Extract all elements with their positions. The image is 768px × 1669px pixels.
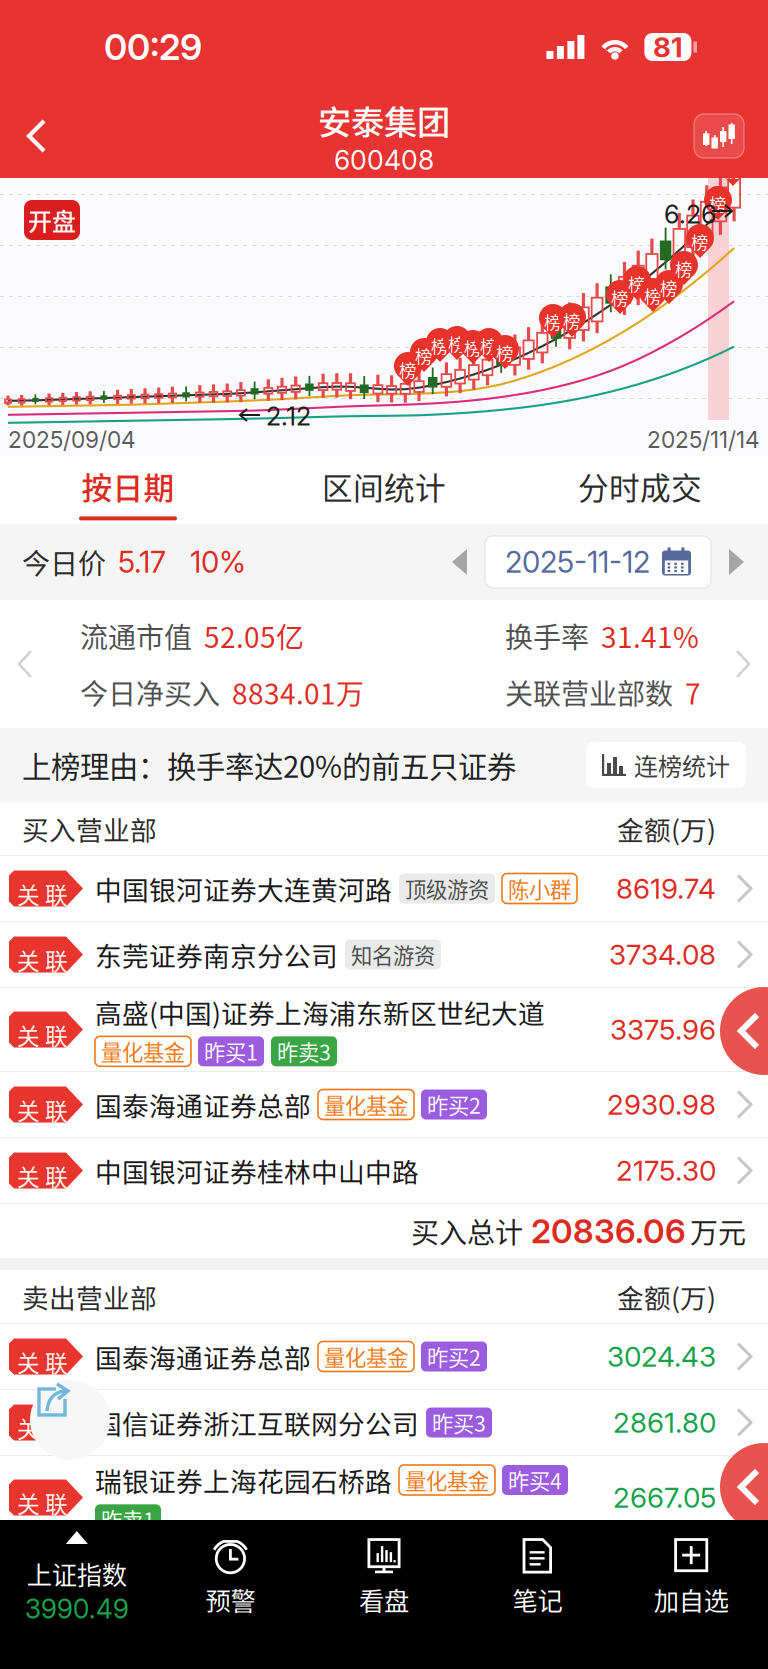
staticText: 8619.74 xyxy=(616,872,716,905)
staticText: 3990.49 xyxy=(25,1593,129,1625)
button[interactable]: Back xyxy=(720,987,768,1075)
button[interactable]: 关 联 xyxy=(0,922,768,988)
staticText: 关 联 xyxy=(17,1345,68,1378)
staticText: 关 联 xyxy=(17,1411,68,1444)
staticText: 关 联 xyxy=(17,1159,68,1192)
staticText: 金额(万) xyxy=(617,809,716,848)
staticText: 换手率 xyxy=(505,615,589,656)
staticText: 分时成交 xyxy=(578,464,702,508)
staticText: 陈小群 xyxy=(508,873,571,904)
button[interactable]: Previous day xyxy=(434,534,485,590)
staticText: 3024.43 xyxy=(607,1340,716,1373)
staticText: 榜 xyxy=(675,256,692,281)
staticText: 3375.96 xyxy=(610,1013,716,1046)
button[interactable]: Back xyxy=(0,101,74,171)
staticText: 量化基金 xyxy=(101,1036,185,1067)
staticText: 高盛(中国)证券上海浦东新区世纪大道 xyxy=(95,993,545,1031)
staticText: 加自选 xyxy=(654,1581,729,1618)
staticText: 2025-11-12 xyxy=(505,544,650,580)
staticText: 8834.01万 xyxy=(232,672,364,712)
button[interactable]: 按日期 xyxy=(0,456,256,524)
staticText: 昨买2 xyxy=(427,1341,481,1372)
staticText: 中国银河证券桂林中山中路 xyxy=(95,1151,419,1190)
staticText: 关 联 xyxy=(17,1018,68,1051)
staticText: 量化基金 xyxy=(405,1465,489,1495)
staticText: 今日净买入 xyxy=(80,672,220,712)
staticText: 安泰集团 xyxy=(318,96,450,144)
staticText: 榜 xyxy=(448,331,465,356)
button[interactable]: K-line chart xyxy=(670,100,768,172)
button[interactable]: 连榜统计 xyxy=(586,742,746,788)
staticText: 今日价 xyxy=(22,542,106,582)
staticText: 区间统计 xyxy=(322,464,446,508)
button[interactable]: Share xyxy=(30,1380,110,1460)
staticText: 中国银河证券大连黄河路 xyxy=(95,869,392,908)
staticText: 榜 xyxy=(399,357,416,382)
staticText: 3734.08 xyxy=(609,938,716,971)
button[interactable]: 区间统计 xyxy=(256,456,512,524)
staticText: 量化基金 xyxy=(324,1089,408,1120)
staticText: 卖出营业部 xyxy=(22,1277,157,1316)
staticText: 东莞证券南京分公司 xyxy=(95,935,338,974)
staticText: 金额(万) xyxy=(617,1277,716,1316)
staticText: 10% xyxy=(190,544,246,580)
staticText: 买入总计 xyxy=(411,1211,523,1251)
button[interactable]: 上证指数 xyxy=(0,1531,154,1625)
staticText: 榜 xyxy=(415,343,432,368)
staticText: 知名游资 xyxy=(351,939,435,970)
staticText: 榜 xyxy=(660,275,677,300)
staticText: 上榜理由： xyxy=(22,744,167,786)
staticText: 关 联 xyxy=(17,1486,68,1519)
staticText: 按日期 xyxy=(81,464,174,508)
button[interactable]: 笔记 xyxy=(461,1538,614,1618)
staticText: 600408 xyxy=(334,144,434,176)
staticText: 榜 xyxy=(496,340,513,365)
staticText: 预警 xyxy=(205,1581,255,1618)
button[interactable]: 预警 xyxy=(154,1538,307,1618)
button[interactable]: 关 联 xyxy=(0,1072,768,1138)
staticText: 81 xyxy=(653,30,683,64)
staticText: 榜 xyxy=(691,229,708,254)
staticText: 顶级游资 xyxy=(405,873,489,904)
button[interactable]: Next day xyxy=(711,534,762,590)
button[interactable]: 2025-11-12 xyxy=(485,536,711,588)
button[interactable]: 加自选 xyxy=(614,1538,768,1618)
staticText: 2861.80 xyxy=(613,1406,716,1439)
staticText: 31.41% xyxy=(601,615,699,656)
staticText: 昨买4 xyxy=(508,1465,562,1495)
button[interactable]: 关 联 xyxy=(0,1324,768,1390)
staticText: 换手率达20%的前五只证券 xyxy=(167,744,516,786)
button[interactable]: 关 联 xyxy=(0,1138,768,1204)
staticText: 20836.06 xyxy=(531,1211,686,1251)
button[interactable]: 分时成交 xyxy=(512,456,768,524)
staticText: 笔记 xyxy=(513,1581,563,1618)
staticText: 瑞银证券上海花园石桥路 xyxy=(95,1461,392,1499)
staticText: 国信证券浙江互联网分公司 xyxy=(95,1403,419,1442)
staticText: 2025/09/04 xyxy=(8,426,136,453)
button[interactable]: 看盘 xyxy=(307,1538,461,1618)
staticText: 看盘 xyxy=(359,1581,409,1618)
staticText: 国泰海通证券总部 xyxy=(95,1085,311,1124)
staticText: 7 xyxy=(685,672,701,712)
button[interactable]: 关 联 xyxy=(0,856,768,922)
staticText: 2175.30 xyxy=(616,1154,716,1187)
staticText: 连榜统计 xyxy=(634,748,730,782)
button[interactable]: 关 联 xyxy=(0,1456,768,1540)
staticText: 2.12 xyxy=(266,401,311,432)
staticText: 昨买1 xyxy=(204,1036,258,1067)
staticText: 关 联 xyxy=(17,877,68,910)
staticText: 5.17 xyxy=(118,544,166,580)
button[interactable]: Back xyxy=(720,1443,768,1531)
staticText: 2930.98 xyxy=(607,1088,716,1121)
staticText: 榜 xyxy=(563,308,580,333)
button[interactable]: 关 联 xyxy=(0,988,768,1072)
staticText: 榜 xyxy=(709,191,726,216)
button[interactable]: 关 联 xyxy=(0,1390,768,1456)
staticText: 榜 xyxy=(724,157,741,182)
staticText: 国泰海通证券总部 xyxy=(95,1337,311,1376)
staticText: 榜 xyxy=(464,335,481,360)
staticText: 2667.05 xyxy=(613,1481,716,1514)
staticText: 关 联 xyxy=(17,943,68,976)
staticText: 关 联 xyxy=(17,1093,68,1126)
staticText: 买入营业部 xyxy=(22,809,157,848)
